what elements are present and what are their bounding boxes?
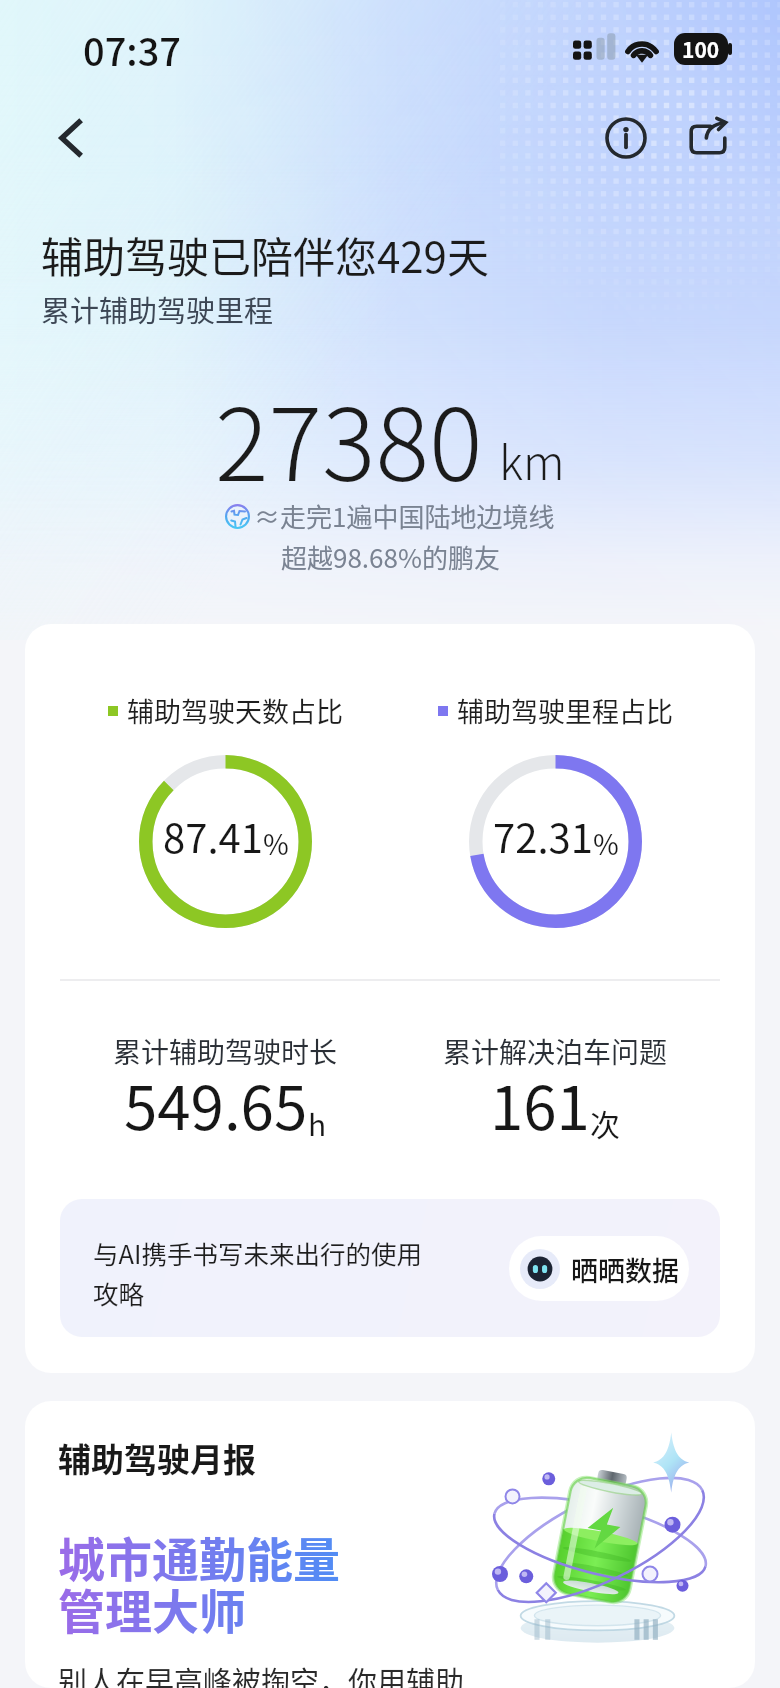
button[interactable]: Share	[682, 112, 734, 164]
staticText: 晒晒数据	[571, 1250, 679, 1289]
staticText: 07:37	[83, 22, 181, 77]
staticText: 城市通勤能量 管理大师	[58, 1522, 340, 1643]
staticText: ≈走完1遍中国陆地边境线	[254, 497, 555, 535]
staticText: 别人在早高峰被掏空，你用辅助	[58, 1659, 465, 1688]
staticText: 辅助驾驶天数占比	[127, 691, 343, 730]
staticText: h	[308, 1101, 327, 1144]
staticText: 161	[490, 1060, 590, 1147]
staticText: 549.65	[124, 1060, 308, 1147]
staticText: km	[499, 427, 565, 494]
staticText: 累计辅助驾驶时长	[113, 1031, 338, 1072]
staticText: 87.41	[163, 807, 263, 865]
staticText: 辅助驾驶里程占比	[457, 691, 673, 730]
staticText: 累计解决泊车问题	[443, 1031, 668, 1072]
staticText: 辅助驾驶已陪伴您429天	[41, 224, 489, 285]
staticText: 累计辅助驾驶里程	[41, 288, 274, 330]
staticText: 超越98.68%的鹏友	[281, 538, 500, 576]
staticText: %	[263, 823, 289, 864]
staticText: %	[593, 823, 619, 864]
button[interactable]: Back	[45, 112, 97, 164]
staticText: 72.31	[493, 807, 593, 865]
staticText: 100	[682, 34, 720, 64]
button[interactable]: Info	[600, 112, 652, 164]
staticText: 与AI携手书写未来出行的使用 攻略	[93, 1234, 493, 1311]
button[interactable]: 晒晒数据	[509, 1236, 689, 1301]
staticText: 次	[590, 1101, 620, 1144]
staticText: 辅助驾驶月报	[58, 1434, 256, 1482]
button[interactable]: 与AI携手书写未来出行的使用 攻略	[60, 1199, 720, 1337]
staticText: 27380	[215, 365, 483, 510]
